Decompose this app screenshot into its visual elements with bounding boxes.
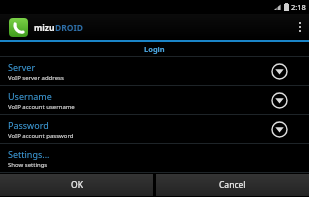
staticText: VoIP account password	[8, 132, 74, 140]
button[interactable]: Username	[0, 86, 309, 114]
staticText: OK	[71, 179, 83, 191]
staticText: mizu	[34, 22, 55, 34]
staticText: Login	[144, 44, 165, 54]
staticText: 2:18	[291, 2, 306, 12]
button[interactable]: Expand Username	[271, 92, 288, 109]
button[interactable]: Expand Server	[271, 63, 288, 80]
button[interactable]: Cancel	[156, 174, 309, 196]
staticText: Password	[8, 119, 49, 131]
staticText: Show settings	[8, 161, 48, 169]
button[interactable]: Expand Password	[271, 121, 288, 138]
staticText: DROID	[55, 22, 84, 34]
button[interactable]: MizuDroid	[9, 18, 28, 37]
staticText: Server	[8, 61, 36, 73]
button[interactable]: More options	[291, 14, 309, 40]
button[interactable]: Settings...	[0, 144, 309, 172]
button[interactable]: OK	[0, 174, 153, 196]
button[interactable]: Login	[0, 42, 309, 56]
staticText: Settings...	[8, 148, 50, 160]
staticText: Username	[8, 90, 52, 102]
button[interactable]: Password	[0, 115, 309, 143]
button[interactable]: Server	[0, 57, 309, 85]
staticText: VoIP server address	[8, 74, 64, 82]
staticText: Cancel	[219, 179, 246, 191]
staticText: VoIP account username	[8, 103, 75, 111]
